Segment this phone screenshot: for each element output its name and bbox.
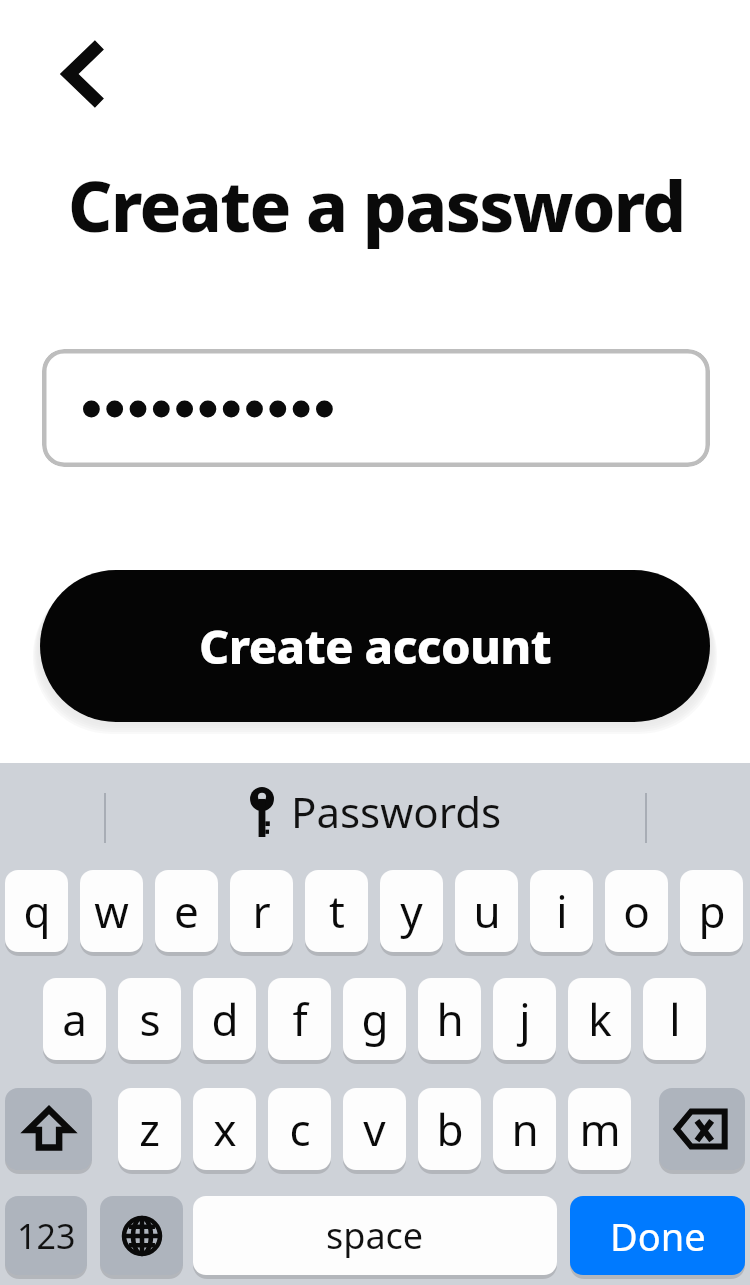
button[interactable]: a	[43, 978, 106, 1060]
staticText: d	[211, 989, 239, 1049]
button[interactable]: Back	[40, 30, 130, 118]
button[interactable]: l	[643, 978, 706, 1060]
button[interactable]: Done	[570, 1196, 745, 1275]
button[interactable]: u	[455, 870, 518, 952]
button[interactable]: b	[418, 1088, 481, 1170]
button[interactable]: 123	[5, 1196, 87, 1275]
button[interactable]: o	[605, 870, 668, 952]
staticText: o	[623, 881, 650, 941]
staticText: n	[511, 1099, 539, 1159]
button[interactable]	[42, 349, 710, 467]
staticText: a	[62, 989, 87, 1049]
staticText: Create account	[199, 614, 552, 678]
staticText: 123	[17, 1213, 76, 1259]
staticText: space	[326, 1211, 424, 1260]
button[interactable]: space	[193, 1196, 557, 1275]
staticText: g	[361, 989, 389, 1049]
button[interactable]: j	[493, 978, 556, 1060]
button[interactable]: s	[118, 978, 181, 1060]
button[interactable]: t	[305, 870, 368, 952]
staticText: e	[174, 881, 199, 941]
staticText: j	[519, 989, 531, 1049]
button[interactable]: c	[268, 1088, 331, 1170]
button[interactable]: z	[118, 1088, 181, 1170]
staticText: m	[579, 1099, 621, 1159]
button[interactable]: v	[343, 1088, 406, 1170]
staticText: q	[23, 881, 51, 941]
button[interactable]: q	[5, 870, 68, 952]
button[interactable]: y	[380, 870, 443, 952]
staticText: x	[213, 1099, 237, 1159]
staticText: k	[588, 989, 612, 1049]
button[interactable]: Passwords	[249, 783, 502, 840]
staticText: t	[329, 881, 345, 941]
button[interactable]: n	[493, 1088, 556, 1170]
staticText: h	[436, 989, 464, 1049]
staticText: y	[400, 881, 423, 941]
staticText: s	[139, 989, 161, 1049]
button[interactable]: h	[418, 978, 481, 1060]
staticText: Done	[610, 1210, 706, 1262]
button[interactable]: Create account	[40, 570, 710, 722]
button[interactable]: Backspace	[659, 1088, 745, 1170]
staticText: Create a password	[68, 158, 685, 252]
staticText: i	[556, 881, 568, 941]
staticText: c	[289, 1099, 311, 1159]
staticText: w	[94, 881, 129, 941]
staticText: b	[436, 1099, 464, 1159]
button[interactable]: p	[680, 870, 743, 952]
button[interactable]: i	[530, 870, 593, 952]
button[interactable]: k	[568, 978, 631, 1060]
staticText: Passwords	[291, 783, 502, 840]
button[interactable]: g	[343, 978, 406, 1060]
staticText: f	[292, 989, 308, 1049]
button[interactable]: e	[155, 870, 218, 952]
staticText: u	[473, 881, 501, 941]
button[interactable]: f	[268, 978, 331, 1060]
button[interactable]: Shift	[5, 1088, 92, 1170]
staticText: r	[252, 881, 271, 941]
button[interactable]: m	[568, 1088, 631, 1170]
button[interactable]: w	[80, 870, 143, 952]
button[interactable]: Next keyboard	[100, 1196, 183, 1275]
staticText: p	[698, 881, 726, 941]
button[interactable]: x	[193, 1088, 256, 1170]
staticText: z	[139, 1099, 160, 1159]
button[interactable]: d	[193, 978, 256, 1060]
button[interactable]: r	[230, 870, 293, 952]
staticText: v	[363, 1099, 386, 1159]
staticText: l	[669, 989, 681, 1049]
